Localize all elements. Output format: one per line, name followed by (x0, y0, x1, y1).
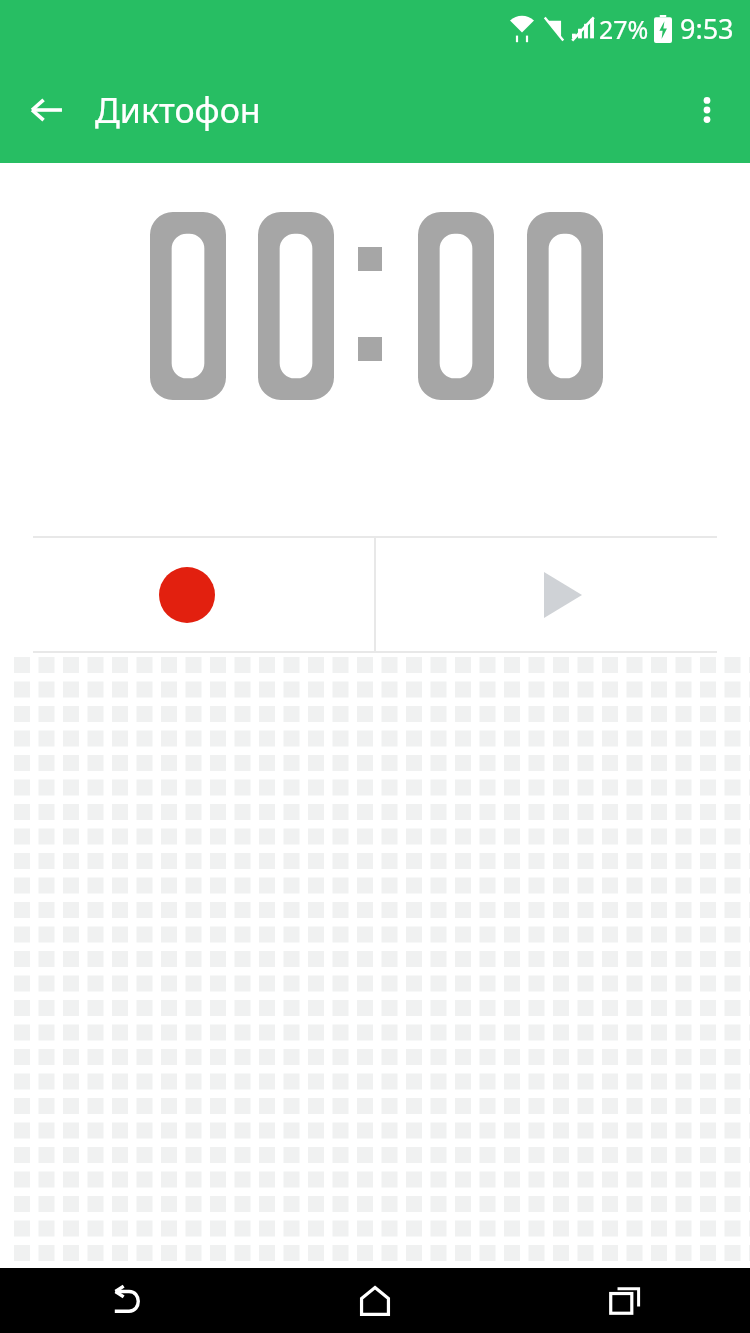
button[interactable]: Play (376, 538, 750, 651)
staticText: Диктофон (95, 87, 261, 133)
button[interactable]: Back (0, 1268, 250, 1333)
button[interactable]: More options (674, 77, 740, 143)
button[interactable]: Back (14, 77, 80, 143)
button[interactable]: Recent apps (500, 1268, 750, 1333)
staticText: 27% (599, 12, 649, 46)
staticText: 9:53 (680, 10, 734, 47)
button[interactable]: Record (0, 538, 374, 651)
button[interactable]: Home (250, 1268, 500, 1333)
